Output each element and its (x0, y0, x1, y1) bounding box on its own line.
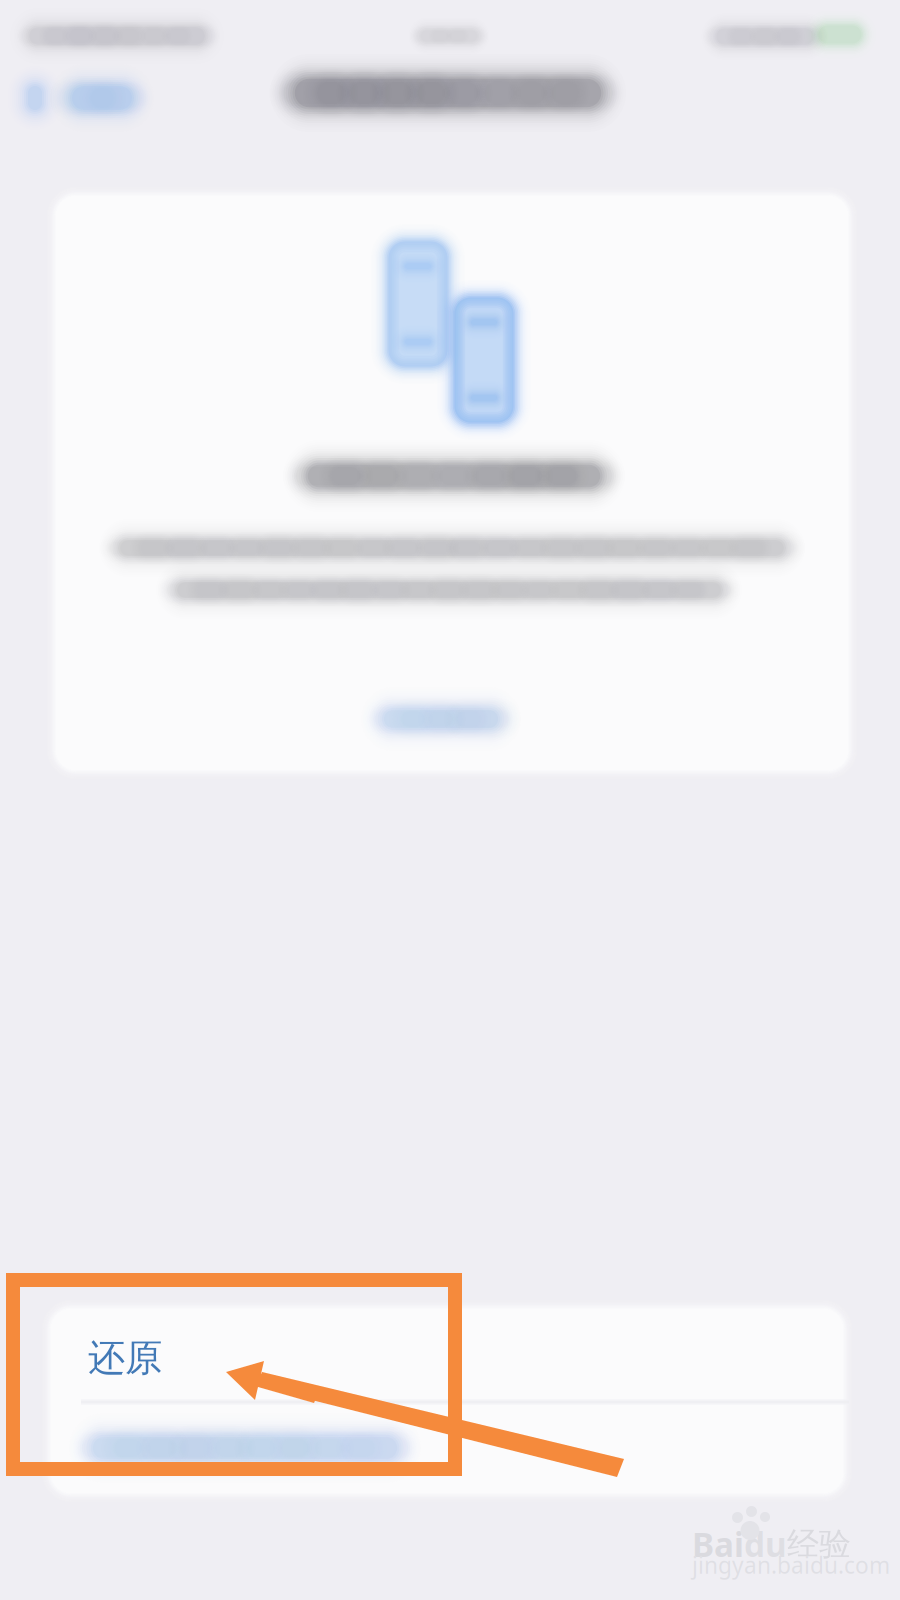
staticText: du (744, 1522, 787, 1566)
staticText: Bai (692, 1522, 744, 1566)
staticText: 还原 (88, 1335, 162, 1381)
button[interactable]: Back (6, 52, 182, 128)
staticText: 经验 (787, 1524, 851, 1564)
button[interactable]: 还原 (45, 1303, 849, 1401)
button[interactable]: Learn more (361, 687, 521, 751)
staticText: jingyan.baidu.com (692, 1550, 890, 1580)
button[interactable]: Erase All Content and Settings (45, 1403, 849, 1501)
